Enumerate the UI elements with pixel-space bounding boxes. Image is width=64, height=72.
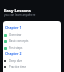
staticText: Overview (9, 33, 22, 37)
staticText: Easy Lessons (4, 8, 31, 14)
staticText: First steps (9, 46, 23, 50)
button[interactable]: Practice time (3, 64, 61, 70)
staticText: Deep dive (9, 59, 23, 63)
staticText: Chapter 2 (5, 51, 22, 56)
button[interactable]: Chapter 2 (5, 51, 22, 56)
staticText: Basic concepts (9, 39, 29, 43)
staticText: Practice time (9, 65, 27, 69)
button[interactable]: First steps (3, 45, 61, 51)
button[interactable]: Deep dive (3, 58, 61, 64)
button[interactable]: Easy Lessons (4, 8, 31, 14)
button[interactable]: Overview (3, 32, 61, 38)
button[interactable]: Basic concepts (3, 38, 61, 44)
button[interactable]: Chapter 1 (5, 25, 22, 30)
staticText: you can learn anywhere (4, 13, 36, 17)
staticText: Chapter 1 (5, 25, 22, 30)
